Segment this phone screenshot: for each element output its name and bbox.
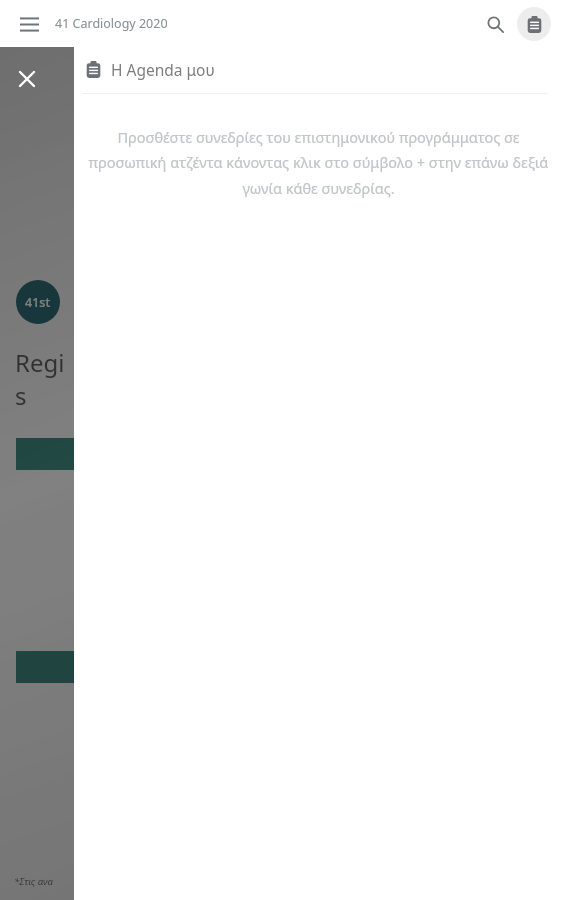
staticText: Προσθέστε συνεδρίες του επιστημονικού πρ… bbox=[88, 127, 549, 199]
staticText: *Στις ανα bbox=[14, 875, 53, 888]
staticText: 41 Cardiology 2020 bbox=[55, 15, 168, 32]
button[interactable]: My Agenda bbox=[517, 7, 551, 41]
staticText: Η Agenda μου bbox=[111, 59, 215, 80]
button[interactable]: Open navigation menu bbox=[12, 7, 46, 41]
button[interactable]: Η Agenda μου bbox=[85, 59, 552, 80]
staticText: Regis bbox=[15, 346, 74, 412]
button[interactable]: Search bbox=[477, 6, 513, 42]
staticText: 41st bbox=[25, 294, 51, 311]
button[interactable]: Close drawer bbox=[10, 62, 44, 96]
